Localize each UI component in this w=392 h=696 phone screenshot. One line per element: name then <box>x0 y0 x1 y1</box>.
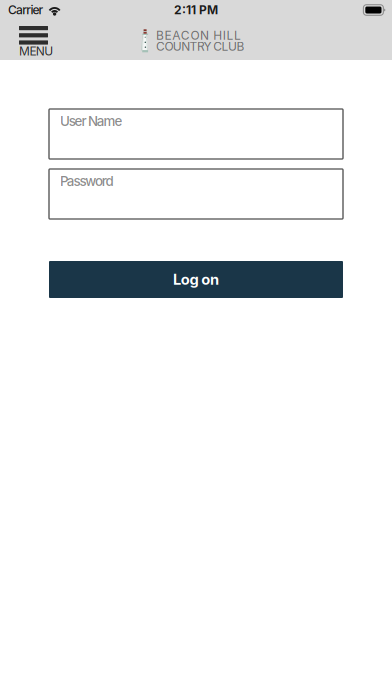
staticText: Password <box>60 173 114 189</box>
button[interactable]: Log on <box>49 261 343 298</box>
button[interactable]: Menu <box>19 20 63 60</box>
staticText: MENU <box>19 44 53 58</box>
button[interactable]: Password <box>49 169 343 219</box>
staticText: Carrier <box>8 3 44 17</box>
staticText: User Name <box>60 113 122 129</box>
staticText: Log on <box>173 271 219 288</box>
staticText: COUNTRY CLUB <box>156 39 244 53</box>
staticText: 2:11 PM <box>174 3 218 17</box>
staticText: BEACON HILL <box>156 28 241 42</box>
button[interactable]: User Name <box>49 109 343 159</box>
